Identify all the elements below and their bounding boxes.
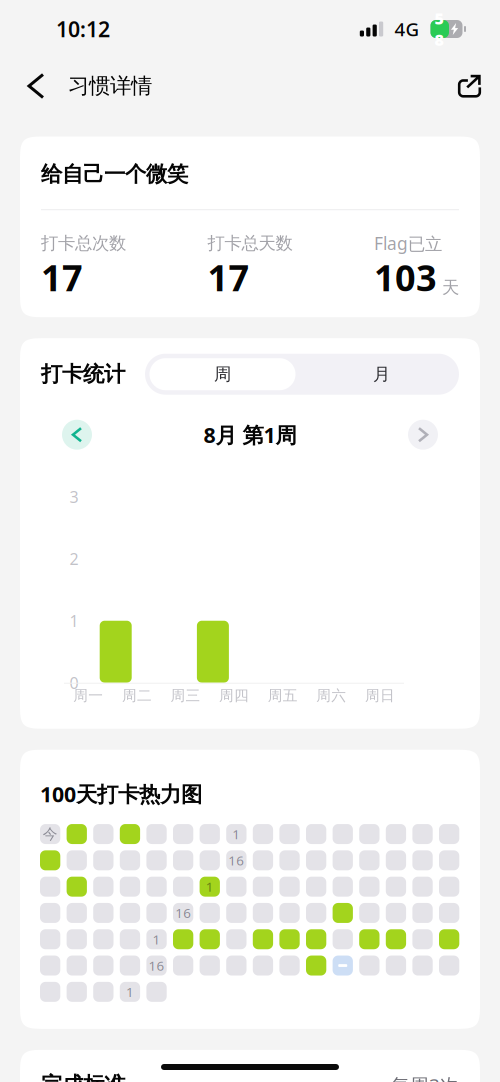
staticText: 完成标准 bbox=[41, 1072, 125, 1082]
staticText: 打卡总次数 bbox=[41, 233, 126, 254]
staticText: 17 bbox=[207, 253, 249, 301]
staticText: 1 bbox=[232, 825, 240, 843]
staticText: 天 bbox=[442, 277, 459, 298]
button[interactable]: Previous week bbox=[62, 420, 92, 450]
staticText: 10:12 bbox=[56, 15, 110, 43]
staticText: 100天打卡热力图 bbox=[40, 780, 202, 808]
staticText: 每周3次 bbox=[391, 1073, 459, 1082]
staticText: 周 bbox=[214, 364, 231, 385]
staticText: 周日 bbox=[365, 687, 395, 705]
staticText: 103 bbox=[374, 253, 437, 301]
staticText: 打卡统计 bbox=[41, 361, 125, 387]
staticText: 4G bbox=[394, 17, 419, 41]
staticText: 周五 bbox=[268, 687, 298, 705]
staticText: 周六 bbox=[316, 687, 346, 705]
staticText: 3 bbox=[69, 486, 78, 507]
button[interactable]: Share bbox=[458, 58, 500, 114]
staticText: 1 bbox=[69, 610, 78, 631]
staticText: 8月 第1周 bbox=[203, 420, 296, 449]
staticText: 58 bbox=[434, 8, 443, 50]
staticText: 16 bbox=[228, 851, 244, 869]
staticText: 习惯详情 bbox=[68, 73, 152, 99]
staticText: 月 bbox=[373, 364, 390, 385]
staticText: 1 bbox=[206, 878, 214, 895]
staticText: 17 bbox=[41, 253, 83, 301]
staticText: 打卡总天数 bbox=[207, 233, 292, 254]
staticText: 给自己一个微笑 bbox=[41, 161, 188, 187]
staticText: 周二 bbox=[122, 687, 152, 705]
staticText: 2 bbox=[69, 548, 78, 569]
staticText: 今 bbox=[43, 825, 58, 843]
button[interactable]: 月 bbox=[308, 358, 454, 390]
staticText: 1 bbox=[153, 930, 161, 948]
staticText: 周三 bbox=[170, 687, 200, 705]
staticText: 周一 bbox=[73, 687, 103, 705]
staticText: 0 bbox=[69, 672, 78, 693]
button[interactable]: Back bbox=[0, 58, 68, 114]
button[interactable]: 周 bbox=[149, 358, 295, 390]
staticText: Flag已立 bbox=[374, 232, 442, 255]
staticText: 周四 bbox=[219, 687, 249, 705]
staticText: 16 bbox=[149, 957, 165, 974]
button[interactable]: Next week bbox=[408, 420, 438, 450]
staticText: 1 bbox=[126, 983, 134, 1001]
staticText: 16 bbox=[175, 904, 191, 922]
